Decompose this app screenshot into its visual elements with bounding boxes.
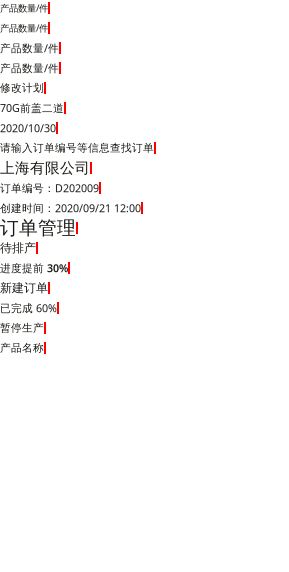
staticText: 产品名称 (0, 341, 44, 354)
staticText: 70G前盖二道 (0, 101, 64, 115)
staticText: 产品数量/件 (0, 41, 59, 55)
staticText: 2020/10/30 (0, 121, 56, 135)
staticText: 创建时间：2020/09/21 12:00 (0, 201, 141, 215)
staticText: 产品数量/件 (0, 22, 48, 34)
staticText: 产品数量/件 (0, 2, 48, 14)
staticText: 已完成 60% (0, 301, 57, 315)
staticText: 订单管理 (0, 216, 76, 239)
staticText: 请输入订单编号等信息查找订单 (0, 141, 154, 154)
staticText: 暂停生产 (0, 321, 44, 334)
staticText: 订单编号：D202009 (0, 181, 99, 195)
staticText: 产品数量/件 (0, 61, 59, 75)
staticText: 进度提前 30% (0, 261, 68, 275)
staticText: 新建订单 (0, 281, 48, 295)
staticText: 上海有限公司 (0, 159, 90, 177)
staticText: 修改计划 (0, 81, 44, 94)
staticText: 待排产 (0, 241, 36, 255)
